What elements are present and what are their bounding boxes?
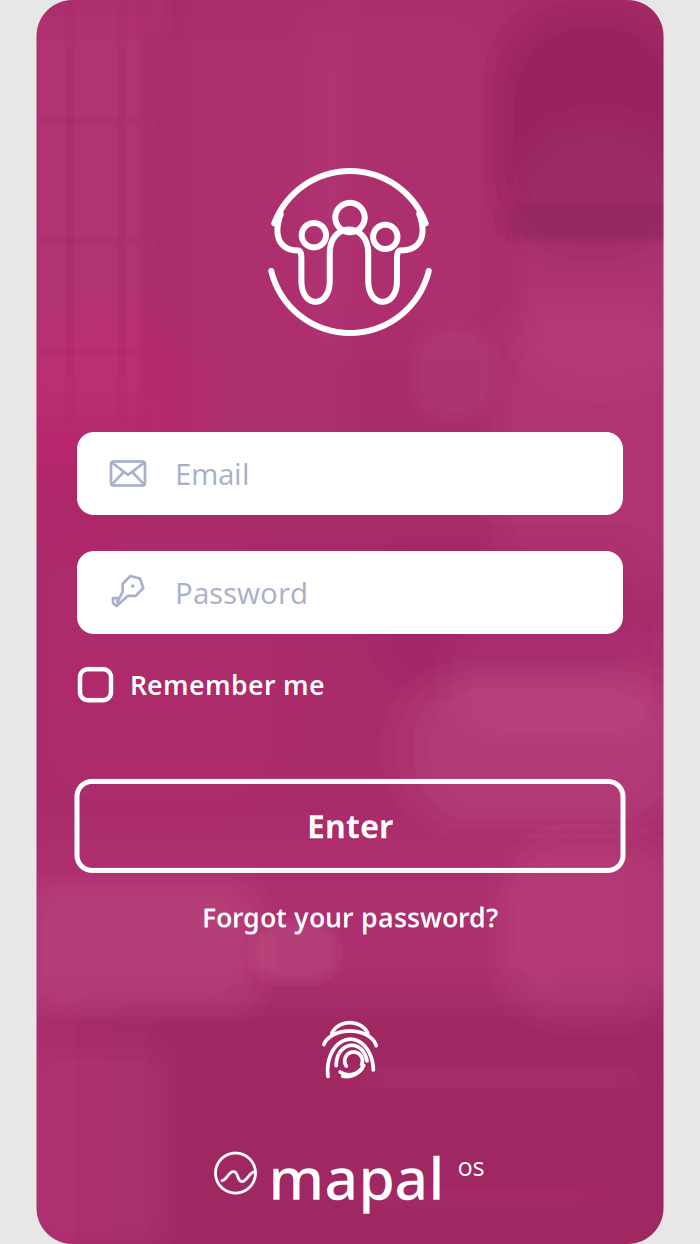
staticText: mapal	[268, 1138, 444, 1216]
button[interactable]: Remember me	[80, 659, 620, 710]
button[interactable]: Enter	[77, 781, 623, 870]
staticText: Email	[175, 454, 250, 493]
staticText: Forgot your password?	[202, 899, 498, 935]
staticText: Remember me	[130, 667, 325, 702]
staticText: Enter	[307, 805, 393, 847]
button[interactable]: Sign in with fingerprint	[308, 1006, 392, 1101]
staticText: Password	[175, 573, 308, 612]
button[interactable]: Forgot your password?	[182, 890, 518, 944]
staticText: os	[457, 1149, 484, 1183]
